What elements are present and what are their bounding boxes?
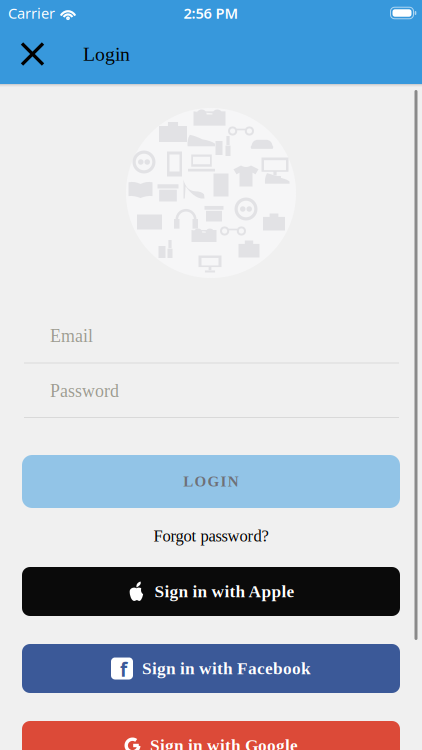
button[interactable]: f <box>22 644 400 693</box>
staticText: Carrier <box>8 3 55 23</box>
button[interactable]: Forgot password? <box>153 527 268 545</box>
staticText: f <box>120 657 127 682</box>
staticText: 2:56 PM <box>183 3 238 23</box>
staticText: LOGIN <box>183 473 239 490</box>
button[interactable]: Sign in with Apple <box>22 567 400 616</box>
staticText: Login <box>83 43 130 65</box>
staticText: Email <box>50 326 93 346</box>
staticText: Password <box>50 381 119 401</box>
button[interactable]: LOGIN <box>22 455 400 508</box>
staticText: Forgot password? <box>153 527 268 545</box>
staticText: Sign in with Google <box>150 736 298 750</box>
button[interactable]: Sign in with Google <box>22 721 400 750</box>
staticText: Sign in with Apple <box>154 582 294 601</box>
textField[interactable]: Email <box>50 326 399 346</box>
staticText: Sign in with Facebook <box>142 659 311 678</box>
secureTextField[interactable]: Password <box>50 381 399 401</box>
button[interactable]: Close <box>20 41 45 66</box>
